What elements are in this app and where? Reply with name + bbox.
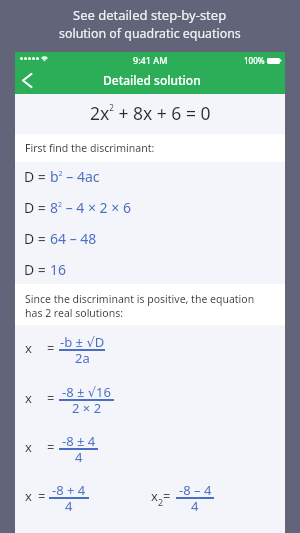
staticText: x: [25, 339, 32, 357]
staticText: 64 – 48: [50, 229, 97, 248]
staticText: 4: [191, 497, 199, 515]
staticText: -8 + 4: [52, 481, 86, 499]
staticText: =: [47, 339, 55, 357]
staticText: Detailed solution: [103, 72, 201, 88]
staticText: 2a: [75, 349, 90, 367]
staticText: b2 – 4ac: [50, 167, 100, 186]
staticText: See detailed step-by-step: [73, 6, 227, 24]
staticText: 16: [50, 260, 67, 279]
staticText: -b ± √D: [60, 333, 105, 351]
staticText: -8 – 4: [179, 481, 212, 499]
staticText: x: [25, 389, 32, 407]
staticText: First find the discriminant:: [25, 141, 155, 155]
staticText: 82 – 4 × 2 × 6: [50, 198, 131, 217]
staticText: =: [47, 438, 55, 456]
staticText: D =: [24, 198, 50, 217]
staticText: 9:41 AM: [133, 54, 168, 66]
staticText: =: [38, 487, 46, 505]
staticText: 4: [75, 448, 83, 466]
staticText: 100%: [244, 55, 265, 66]
staticText: -8 ± √16: [62, 383, 111, 401]
staticText: D =: [24, 229, 50, 248]
staticText: D =: [24, 167, 50, 186]
staticText: -8 ± 4: [62, 432, 96, 450]
staticText: Since the discriminant is positive, the …: [25, 292, 259, 320]
staticText: solution of quadratic equations: [59, 25, 241, 42]
staticText: 4: [65, 497, 73, 515]
staticText: 2 × 2: [72, 399, 102, 417]
staticText: x2=: [151, 487, 171, 508]
staticText: 2x2 + 8x + 6 = 0: [90, 101, 211, 125]
staticText: x: [25, 438, 32, 456]
staticText: =: [47, 389, 55, 407]
staticText: x: [25, 487, 32, 505]
staticText: D =: [24, 260, 50, 279]
button[interactable]: Back: [14, 67, 40, 93]
